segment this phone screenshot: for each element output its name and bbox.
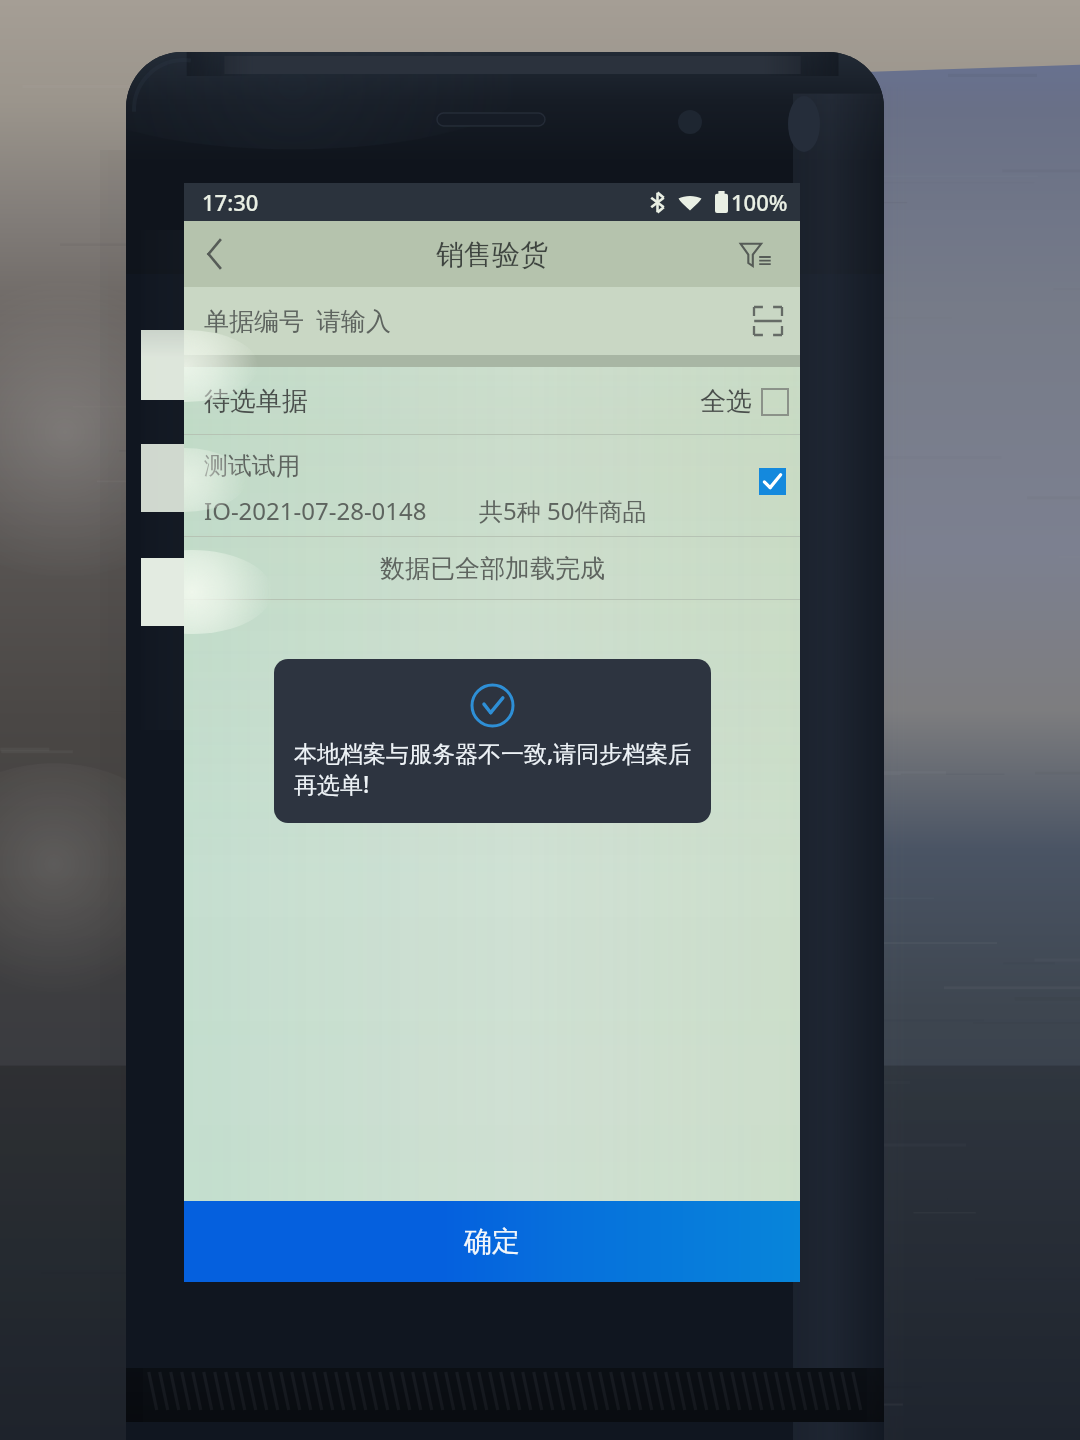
staticText: 共5种 50件商品 — [479, 494, 647, 527]
button[interactable]: Filter — [736, 221, 800, 287]
staticText: IO-2021-07-28-0148 — [204, 494, 427, 527]
staticText: 确定 — [464, 1224, 520, 1259]
button[interactable]: Document selected — [759, 468, 786, 495]
staticText: 待选单据 — [204, 385, 308, 418]
button[interactable]: 确定 — [184, 1201, 800, 1282]
staticText: 全选 — [700, 385, 752, 418]
button[interactable]: 待选单据 — [184, 367, 800, 435]
staticText: 100% — [731, 187, 788, 217]
staticText: 数据已全部加载完成 — [380, 553, 605, 584]
staticText: 本地档案与服务器不一致,请同步档案后 — [294, 737, 692, 768]
staticText: 再选单! — [294, 768, 370, 799]
staticText: 请输入 — [316, 306, 391, 337]
button[interactable]: 测试试用 — [184, 435, 800, 537]
staticText: 单据编号 — [204, 306, 304, 337]
button[interactable]: Scan barcode — [736, 287, 800, 355]
staticText: 17:30 — [202, 187, 259, 217]
button[interactable]: Back — [184, 221, 244, 287]
staticText: 销售验货 — [436, 237, 548, 272]
staticText: 测试试用 — [204, 451, 300, 481]
